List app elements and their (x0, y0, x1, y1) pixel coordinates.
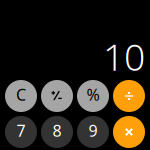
button[interactable]: 9 (77, 116, 109, 148)
staticText: 8 (52, 120, 61, 141)
button[interactable]: 8 (41, 116, 73, 148)
button[interactable]: % (77, 80, 109, 112)
staticText: % (86, 84, 99, 105)
button[interactable]: 7 (5, 116, 37, 148)
button[interactable]: Divide (113, 80, 145, 112)
staticText: 7 (16, 120, 25, 141)
button[interactable]: Multiply (113, 116, 145, 148)
staticText: C (16, 84, 26, 105)
button[interactable]: Plus minus (41, 80, 73, 112)
button[interactable]: C (5, 80, 37, 112)
staticText: 10 (103, 31, 145, 81)
staticText: 9 (88, 120, 97, 141)
